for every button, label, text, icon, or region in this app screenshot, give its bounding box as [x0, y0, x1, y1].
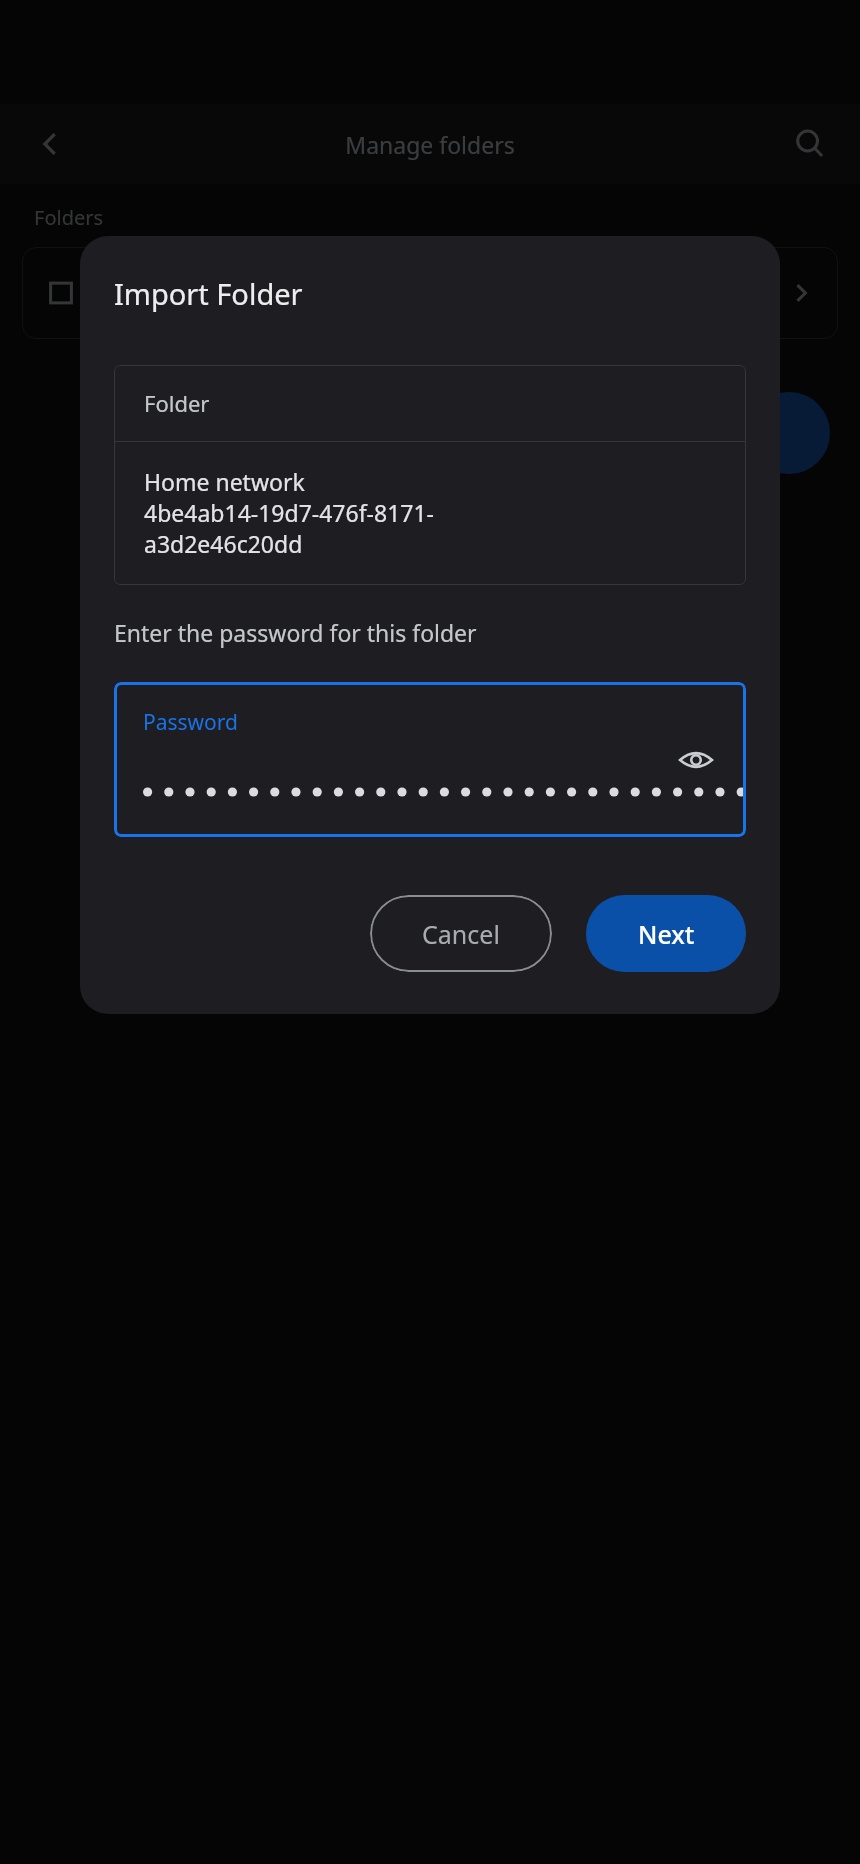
button[interactable]: Password: [114, 682, 746, 837]
button[interactable]: Cancel: [370, 895, 552, 972]
staticText: Cancel: [422, 917, 500, 951]
staticText: 4be4ab14-19d7-476f-8171-: [144, 497, 435, 528]
staticText: Folder: [144, 388, 210, 418]
button[interactable]: Add folder: [748, 392, 830, 474]
staticText: Enter the password for this folder: [114, 617, 477, 648]
button[interactable]: Next: [586, 895, 746, 972]
staticText: Next: [638, 917, 695, 951]
button[interactable]: Show password: [664, 728, 728, 792]
button[interactable]: Search: [782, 116, 838, 172]
staticText: Import Folder: [114, 274, 303, 313]
button[interactable]: Back: [22, 116, 78, 172]
staticText: a3d2e46c20dd: [144, 528, 303, 559]
staticText: Home network: [144, 466, 305, 497]
staticText: Folders: [34, 204, 104, 231]
staticText: Password: [143, 708, 238, 737]
button[interactable]: [22, 247, 838, 339]
staticText: Manage folders: [345, 129, 515, 160]
